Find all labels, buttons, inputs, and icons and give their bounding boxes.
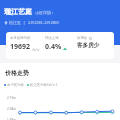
staticText: 价格走势 <box>5 69 29 77</box>
other: Info <box>89 37 92 40</box>
staticText: 客多房少 <box>77 42 100 49</box>
staticText: 环比上涨 <box>45 36 59 40</box>
button[interactable]: 本月挂牌均价 <box>6 32 114 59</box>
staticText: 2月23日-2月28日 <box>28 20 60 25</box>
staticText: 本月挂牌均价 <box>10 36 31 40</box>
staticText: 瓏江艺庭 <box>4 7 32 16</box>
staticText: 小区详情 › <box>35 10 54 15</box>
staticText: | <box>23 20 26 25</box>
staticText: 供需比 <box>77 36 88 40</box>
staticText: 19692 <box>10 42 31 52</box>
staticText: 2.19w <box>7 96 16 100</box>
staticText: 2.04w <box>7 107 16 111</box>
staticText: 松江区均价(元/㎡) <box>30 82 58 87</box>
staticText: 元/㎡ <box>32 47 41 52</box>
staticText: 0.4% <box>45 42 62 52</box>
button[interactable]: 小区详情 › <box>35 10 54 16</box>
staticText: 松江区 <box>9 20 21 25</box>
staticText: 本小区均价 <box>7 83 24 87</box>
staticText: 1.89w <box>7 118 16 120</box>
